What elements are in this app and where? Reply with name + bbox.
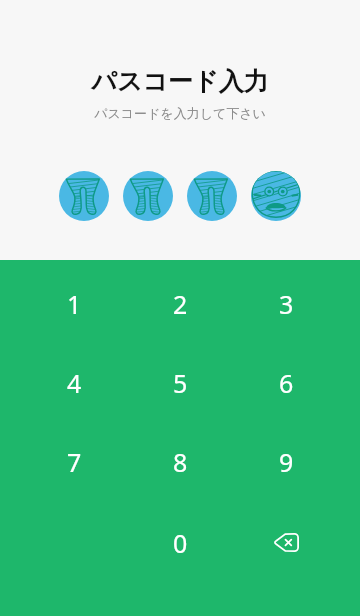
staticText: 5	[173, 366, 188, 400]
other: Empty digit	[187, 171, 237, 221]
staticText: 1	[67, 287, 82, 321]
other: Empty digit	[123, 171, 173, 221]
button[interactable]: 3	[233, 264, 339, 343]
staticText: 0	[173, 526, 188, 560]
button[interactable]: 7	[21, 422, 127, 501]
button[interactable]: 2	[127, 264, 233, 343]
button[interactable]: 6	[233, 343, 339, 422]
staticText: パスコード入力	[91, 66, 269, 97]
button[interactable]: 8	[127, 422, 233, 501]
button[interactable]: 0	[127, 503, 233, 582]
staticText: 7	[67, 445, 82, 479]
staticText: 8	[173, 445, 188, 479]
button[interactable]: 5	[127, 343, 233, 422]
button[interactable]: 1	[21, 264, 127, 343]
button[interactable]: 9	[233, 422, 339, 501]
staticText: 2	[173, 287, 188, 321]
button[interactable]: 4	[21, 343, 127, 422]
staticText: 4	[67, 366, 82, 400]
other: Entered digit	[251, 171, 301, 221]
staticText: 6	[279, 366, 294, 400]
staticText: 3	[279, 287, 294, 321]
staticText: 9	[279, 445, 294, 479]
button[interactable]: Backspace	[233, 503, 339, 582]
staticText: パスコードを入力して下さい	[94, 105, 266, 121]
other: Empty digit	[59, 171, 109, 221]
